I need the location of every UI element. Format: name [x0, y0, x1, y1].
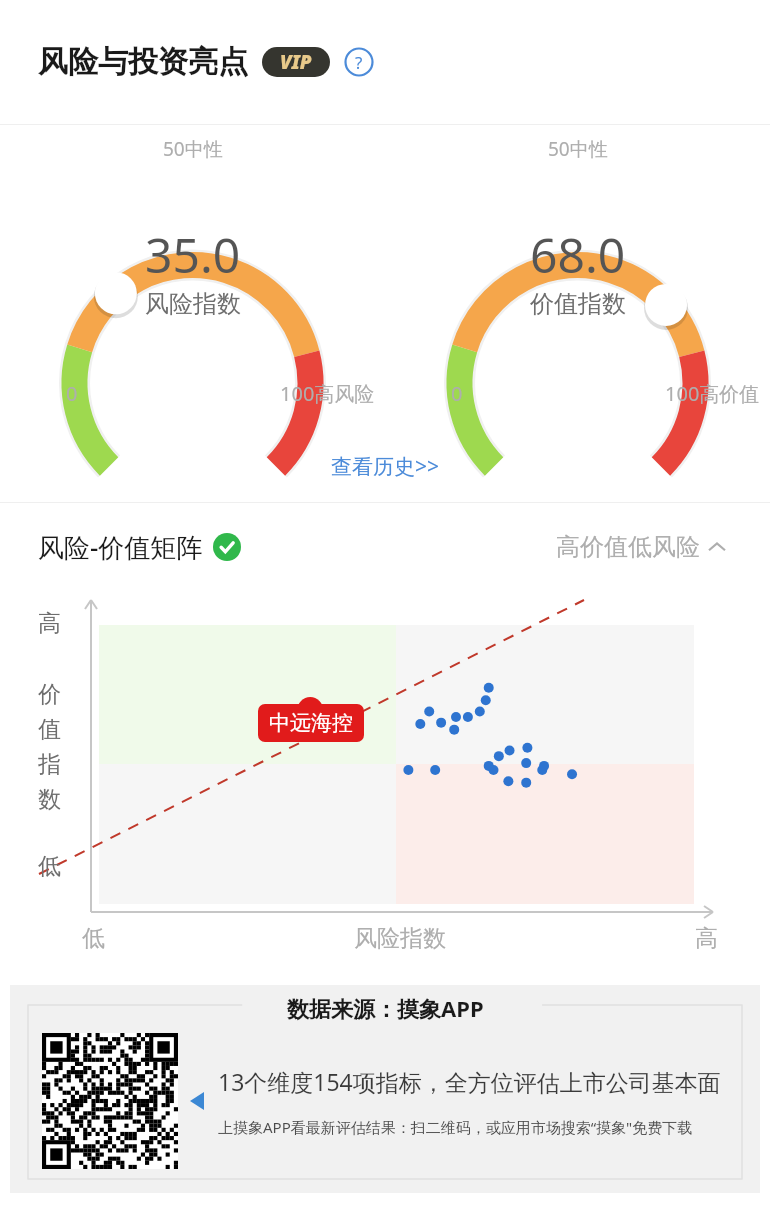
button[interactable]: 中远海控 [258, 704, 364, 742]
staticText: 低 [38, 852, 61, 881]
staticText: 13个维度154项指标，全方位评估上市公司基本面 [218, 1066, 721, 1097]
staticText: VIP [280, 49, 312, 75]
button[interactable]: 高价值低风险 [550, 526, 732, 568]
button[interactable]: 帮助 [344, 47, 374, 77]
staticText: 数据来源：摸象APP [287, 993, 484, 1023]
staticText: 查看历史>> [331, 452, 440, 481]
staticText: 指 [38, 750, 61, 779]
staticText: 50中性 [163, 136, 223, 162]
staticText: 值 [38, 715, 61, 744]
staticText: 高 [38, 609, 61, 638]
staticText: 价值指数 [530, 289, 626, 319]
staticText: 风险-价值矩阵 [38, 529, 203, 565]
staticText: ? [355, 51, 363, 74]
button[interactable]: 查看历史>> [313, 444, 458, 489]
staticText: 100高风险 [280, 380, 375, 407]
staticText: 低 [82, 924, 105, 953]
staticText: 0 [66, 380, 78, 407]
staticText: 68.0 [530, 222, 626, 287]
staticText: 35.0 [145, 222, 241, 287]
staticText: 中远海控 [269, 710, 353, 736]
staticText: 0 [451, 380, 463, 407]
button[interactable]: VIP [262, 47, 330, 77]
staticText: 100高价值 [665, 380, 760, 407]
staticText: 风险指数 [354, 924, 446, 953]
staticText: 价 [38, 680, 61, 709]
staticText: 上摸象APP看最新评估结果：扫二维码，或应用市场搜索“摸象"免费下载 [218, 1117, 693, 1137]
staticText: 高 [695, 924, 718, 953]
other: 已验证 [213, 533, 241, 561]
staticText: 数 [38, 785, 61, 814]
staticText: 风险指数 [145, 289, 241, 319]
staticText: 风险与投资亮点 [38, 43, 248, 81]
staticText: 高价值低风险 [556, 532, 700, 562]
staticText: 50中性 [548, 136, 608, 162]
